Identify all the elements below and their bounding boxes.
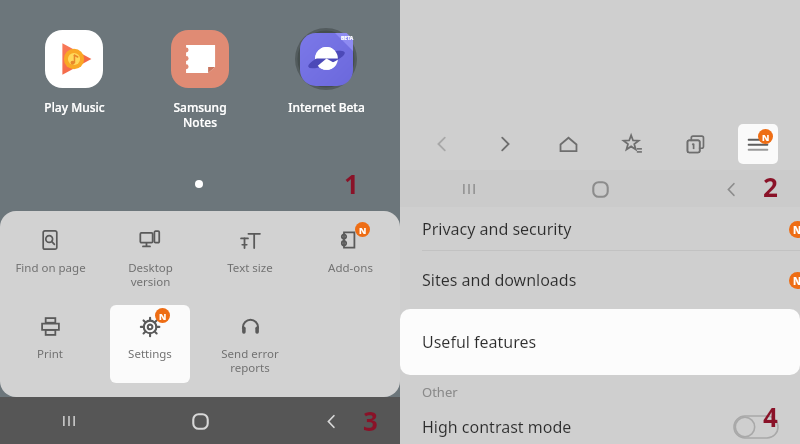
button[interactable]: Play Music <box>24 28 124 115</box>
staticText: N <box>793 223 800 237</box>
staticText: Internet Beta <box>288 99 365 115</box>
button[interactable]: Privacy and security <box>400 207 800 251</box>
button[interactable]: Recents <box>452 172 486 206</box>
button[interactable]: Back <box>714 172 748 206</box>
staticText: BETA <box>341 35 354 42</box>
button[interactable]: Forward <box>485 124 525 164</box>
staticText: 4 <box>763 399 778 434</box>
staticText: N <box>359 224 367 236</box>
button[interactable]: Back <box>422 124 462 164</box>
button[interactable]: N <box>110 305 190 383</box>
staticText: Privacy and security <box>422 218 572 240</box>
button[interactable]: Text size <box>210 219 290 297</box>
button[interactable]: Samsung Notes <box>150 28 250 130</box>
staticText: N <box>762 131 770 143</box>
button[interactable]: Desktop version <box>110 219 190 297</box>
staticText: 2 <box>763 169 778 204</box>
staticText: Useful features <box>422 331 537 353</box>
button[interactable]: BETA <box>276 28 376 115</box>
button[interactable]: Home <box>183 404 217 438</box>
button[interactable]: Sites and downloads <box>400 251 800 309</box>
staticText: Play Music <box>44 99 105 115</box>
staticText: Desktop version <box>128 260 173 289</box>
staticText: Other <box>422 383 458 401</box>
staticText: Add-ons <box>328 260 373 276</box>
button[interactable]: Useful features <box>400 309 800 375</box>
button[interactable]: Bookmarks <box>612 124 652 164</box>
button[interactable]: Back <box>314 404 348 438</box>
button[interactable]: Send error reports <box>210 305 290 383</box>
staticText: 3 <box>363 403 378 438</box>
staticText: Samsung Notes <box>173 99 227 130</box>
staticText: N <box>159 310 167 322</box>
button[interactable]: Home <box>583 172 617 206</box>
staticText: Sites and downloads <box>422 269 577 291</box>
button[interactable]: Print <box>10 305 90 383</box>
staticText: Text size <box>227 260 273 276</box>
staticText: High contrast mode <box>422 416 572 438</box>
button[interactable]: Tabs <box>675 124 715 164</box>
staticText: Print <box>37 346 63 362</box>
staticText: N <box>793 274 800 288</box>
button[interactable]: High contrast mode <box>422 409 778 444</box>
staticText: Find on page <box>15 260 86 276</box>
button[interactable]: Home <box>548 124 588 164</box>
staticText: Settings <box>128 346 172 362</box>
staticText: Send error reports <box>221 346 279 375</box>
staticText: 1 <box>344 166 359 201</box>
button[interactable]: Recents <box>52 404 86 438</box>
button[interactable]: Menu <box>738 124 778 164</box>
button[interactable]: N <box>310 219 390 297</box>
button[interactable]: Find on page <box>10 219 90 297</box>
